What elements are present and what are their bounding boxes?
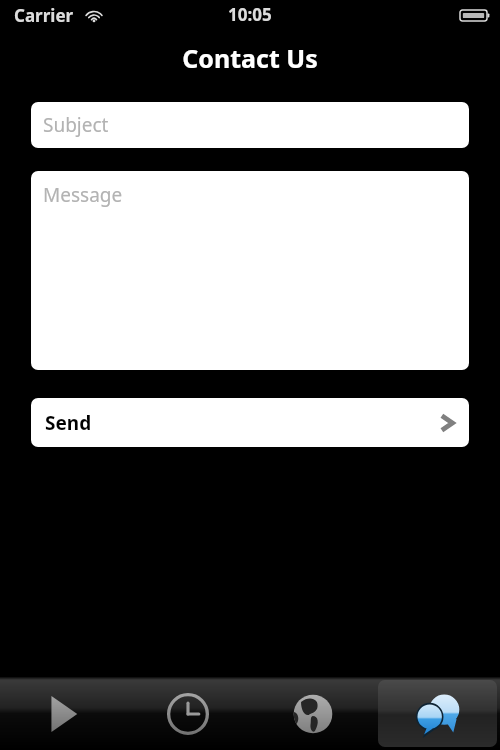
staticText: Send bbox=[45, 410, 92, 436]
button[interactable]: Contact Us bbox=[378, 680, 497, 747]
staticText: Subject bbox=[43, 112, 109, 138]
button[interactable]: Message bbox=[31, 171, 469, 370]
button[interactable]: Subject bbox=[31, 102, 469, 148]
staticText: Carrier bbox=[14, 4, 74, 27]
button[interactable]: Recent bbox=[128, 680, 247, 747]
staticText: Contact Us bbox=[182, 41, 318, 75]
staticText: Message bbox=[43, 182, 123, 208]
button[interactable]: Web bbox=[253, 680, 372, 747]
button[interactable]: Play bbox=[3, 680, 122, 747]
button[interactable]: Send bbox=[31, 398, 469, 447]
staticText: 10:05 bbox=[228, 3, 272, 26]
